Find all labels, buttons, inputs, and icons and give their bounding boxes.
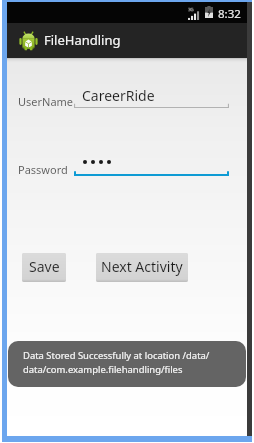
staticText: Data Stored Successfully at location /da… <box>23 349 213 376</box>
staticText: Save <box>29 257 60 276</box>
staticText: CareerRide <box>82 86 155 105</box>
staticText: Password <box>18 162 68 177</box>
staticText: 8:32 <box>218 6 241 22</box>
staticText: UserName <box>18 94 74 109</box>
button[interactable]: Save <box>22 253 66 282</box>
button[interactable]: Data Stored Successfully at location /da… <box>8 341 246 387</box>
staticText: FileHandling <box>44 31 121 49</box>
button[interactable]: Next Activity <box>96 253 188 282</box>
staticText: Next Activity <box>101 257 183 276</box>
